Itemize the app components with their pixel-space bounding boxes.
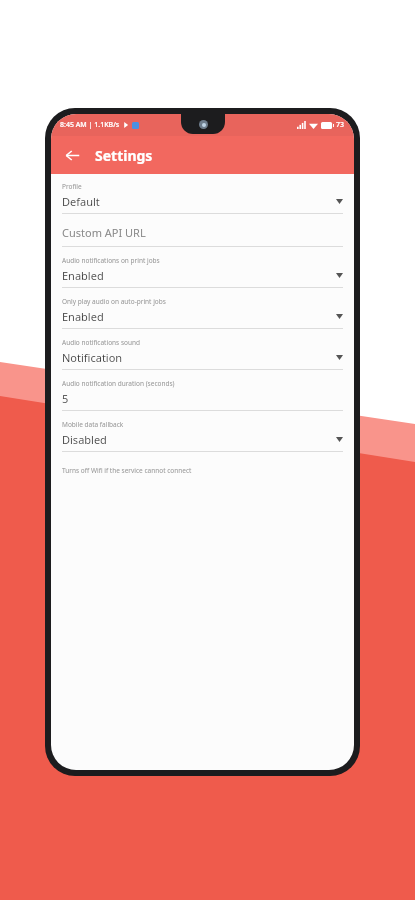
staticText: Only play audio on auto-print jobs: [62, 297, 166, 306]
button[interactable]: Audio notifications sound: [62, 338, 343, 379]
staticText: Profile: [62, 182, 82, 191]
button[interactable]: Profile: [62, 182, 343, 223]
button[interactable]: Back: [57, 140, 87, 170]
staticText: 5: [62, 391, 343, 406]
staticText: Audio notifications sound: [62, 338, 140, 347]
button[interactable]: Only play audio on auto-print jobs: [62, 297, 343, 338]
button[interactable]: Audio notification duration (seconds): [62, 379, 343, 420]
staticText: Custom API URL: [62, 225, 146, 240]
staticText: Default: [62, 194, 336, 209]
staticText: Turns off Wifi if the service cannot con…: [62, 466, 192, 475]
staticText: 8:45 AM | 1.1KB/s: [60, 120, 120, 130]
staticText: Audio notification duration (seconds): [62, 379, 175, 388]
button[interactable]: Mobile data fallback: [62, 420, 343, 461]
staticText: Notification: [62, 350, 336, 365]
button[interactable]: Custom API URL: [62, 223, 343, 256]
staticText: 73: [336, 120, 345, 130]
staticText: Disabled: [62, 432, 336, 447]
staticText: Audio notifications on print jobs: [62, 256, 160, 265]
staticText: Mobile data fallback: [62, 420, 124, 429]
staticText: Settings: [95, 146, 153, 165]
button[interactable]: Audio notifications on print jobs: [62, 256, 343, 297]
staticText: Enabled: [62, 309, 336, 324]
staticText: Enabled: [62, 268, 336, 283]
